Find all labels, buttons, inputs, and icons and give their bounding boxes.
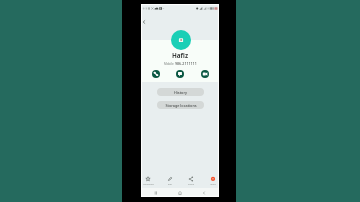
button[interactable]: Home <box>176 189 184 197</box>
button[interactable]: Back <box>141 20 151 30</box>
staticText: 986-2111111 <box>175 61 197 66</box>
button[interactable]: History <box>157 88 204 96</box>
staticText: Hafiz <box>172 51 189 60</box>
button[interactable]: Call <box>152 70 160 78</box>
button[interactable]: Share <box>181 176 201 190</box>
button[interactable]: Video call <box>201 70 209 78</box>
button[interactable]: More <box>203 176 223 190</box>
staticText: History <box>174 90 187 95</box>
button[interactable]: Message <box>176 70 184 78</box>
button[interactable]: Favourites <box>138 176 158 190</box>
button[interactable]: Recents <box>152 189 160 197</box>
button[interactable]: Back <box>200 189 208 197</box>
staticText: Storage locations <box>165 103 197 108</box>
button[interactable]: Edit <box>160 176 180 190</box>
staticText: Edit <box>168 183 172 186</box>
button[interactable]: Storage locations <box>157 101 204 109</box>
staticText: Favourites <box>143 183 154 186</box>
staticText: Share <box>188 183 194 186</box>
button[interactable]: Contact photo <box>171 30 191 50</box>
staticText: Mobile <box>164 62 174 66</box>
staticText: More <box>210 183 216 186</box>
